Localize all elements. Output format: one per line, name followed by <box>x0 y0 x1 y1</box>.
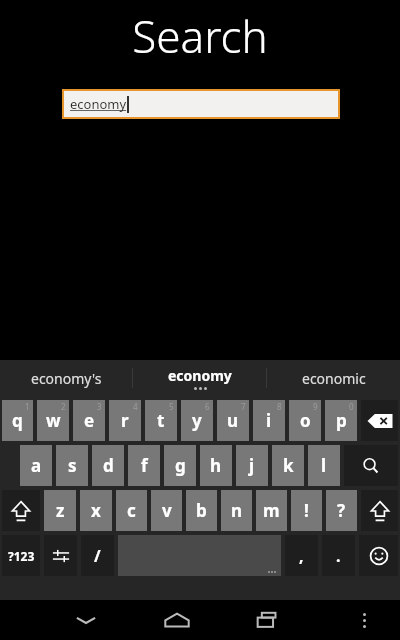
staticText: economic <box>302 369 366 388</box>
button[interactable]: m <box>256 490 287 531</box>
button[interactable]: , <box>285 535 318 576</box>
staticText: 4 <box>133 401 138 412</box>
staticText: y <box>192 409 202 432</box>
staticText: s <box>68 454 77 477</box>
button[interactable]: Emoji <box>359 535 398 576</box>
staticText: l <box>321 454 327 477</box>
staticText: 6 <box>205 401 210 412</box>
button[interactable]: / <box>81 535 114 576</box>
staticText: 5 <box>169 401 174 412</box>
button[interactable]: f <box>128 445 160 486</box>
button[interactable]: j <box>236 445 268 486</box>
staticText: , <box>299 545 304 567</box>
button[interactable]: d <box>92 445 124 486</box>
staticText: / <box>94 545 101 567</box>
button[interactable]: q <box>2 400 33 441</box>
button[interactable]: . <box>322 535 355 576</box>
staticText: m <box>263 499 280 522</box>
staticText: v <box>162 499 172 522</box>
button[interactable]: economy <box>64 91 338 117</box>
button[interactable]: Shift <box>2 490 40 531</box>
button[interactable]: o <box>289 400 321 441</box>
button[interactable]: economic <box>267 360 400 396</box>
staticText: f <box>141 454 148 477</box>
button[interactable]: Input settings <box>44 535 77 576</box>
staticText: p <box>336 409 347 432</box>
button[interactable]: More options <box>340 600 388 640</box>
button[interactable]: v <box>151 490 182 531</box>
staticText: t <box>157 409 165 432</box>
button[interactable]: Hide keyboard <box>55 600 116 640</box>
button[interactable]: Backspace <box>361 400 398 441</box>
staticText: Search <box>132 6 268 66</box>
staticText: c <box>127 499 136 522</box>
button[interactable]: Search <box>344 445 398 486</box>
button[interactable]: economy <box>133 360 266 396</box>
button[interactable]: z <box>44 490 76 531</box>
staticText: b <box>196 499 207 522</box>
staticText: j <box>249 454 255 477</box>
staticText: x <box>91 499 101 522</box>
button[interactable]: s <box>56 445 88 486</box>
button[interactable]: t <box>145 400 177 441</box>
staticText: 7 <box>241 401 246 412</box>
button[interactable]: c <box>116 490 147 531</box>
staticText: economy <box>168 366 232 385</box>
button[interactable]: ! <box>291 490 322 531</box>
staticText: d <box>103 454 114 477</box>
button[interactable]: Shift <box>361 490 398 531</box>
staticText: u <box>227 409 239 432</box>
staticText: g <box>175 454 186 477</box>
button[interactable]: b <box>186 490 217 531</box>
button[interactable]: w <box>37 400 69 441</box>
button[interactable]: l <box>308 445 340 486</box>
button[interactable]: g <box>164 445 196 486</box>
button[interactable]: n <box>221 490 252 531</box>
staticText: w <box>46 409 61 432</box>
button[interactable]: p <box>325 400 357 441</box>
button[interactable]: e <box>73 400 105 441</box>
staticText: . <box>336 545 341 567</box>
staticText: k <box>283 454 294 477</box>
staticText: 9 <box>313 401 318 412</box>
button[interactable]: Home <box>146 600 207 640</box>
button[interactable]: i <box>253 400 285 441</box>
staticText: 3 <box>97 401 102 412</box>
button[interactable]: economy's <box>0 360 132 396</box>
button[interactable]: x <box>80 490 112 531</box>
staticText: 8 <box>277 401 282 412</box>
button[interactable]: a <box>20 445 52 486</box>
staticText: h <box>210 454 222 477</box>
staticText: e <box>84 409 95 432</box>
staticText: 1 <box>25 401 30 412</box>
button[interactable]: ? <box>326 490 357 531</box>
staticText: ! <box>304 499 309 522</box>
staticText: n <box>231 499 243 522</box>
button[interactable]: r <box>109 400 141 441</box>
staticText: economy's <box>31 369 102 388</box>
staticText: ? <box>337 499 346 522</box>
staticText: z <box>56 499 65 522</box>
staticText: economy <box>70 95 127 113</box>
staticText: i <box>266 409 272 432</box>
button[interactable]: ?123 <box>2 535 40 576</box>
staticText: ?123 <box>8 548 35 564</box>
button[interactable]: y <box>181 400 213 441</box>
staticText: q <box>12 409 23 432</box>
staticText: a <box>31 454 42 477</box>
staticText: o <box>300 409 311 432</box>
staticText: 2 <box>61 401 66 412</box>
button[interactable]: k <box>272 445 304 486</box>
staticText: 0 <box>349 401 354 412</box>
button[interactable]: Recent apps <box>237 600 298 640</box>
button[interactable]: h <box>200 445 232 486</box>
button[interactable]: u <box>217 400 249 441</box>
staticText: r <box>121 409 129 432</box>
